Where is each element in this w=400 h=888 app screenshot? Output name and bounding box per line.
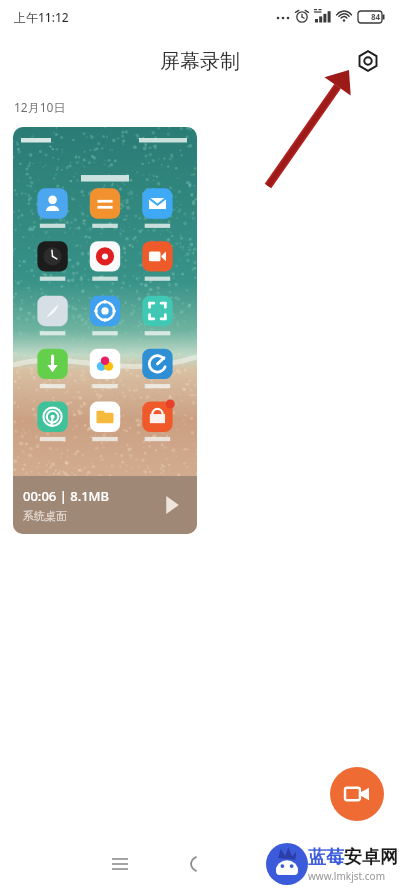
button[interactable]: Play: [163, 496, 181, 514]
staticText: 蓝莓: [308, 846, 344, 869]
staticText: 上午11:12: [14, 9, 69, 25]
staticText: 屏幕录制: [160, 49, 240, 74]
button[interactable]: Recents: [100, 840, 140, 888]
staticText: 12月10日: [14, 99, 66, 115]
staticText: 安卓网: [344, 846, 398, 869]
button[interactable]: 00:06 | 8.1MB: [13, 127, 197, 534]
staticText: 系统桌面: [23, 509, 67, 523]
staticText: 00:06 | 8.1MB: [23, 487, 110, 505]
button[interactable]: Back: [178, 840, 218, 888]
staticText: 84: [371, 11, 381, 22]
staticText: www.lmkjst.com: [308, 869, 385, 883]
button[interactable]: Settings: [350, 43, 386, 79]
button[interactable]: Start recording: [330, 767, 384, 821]
